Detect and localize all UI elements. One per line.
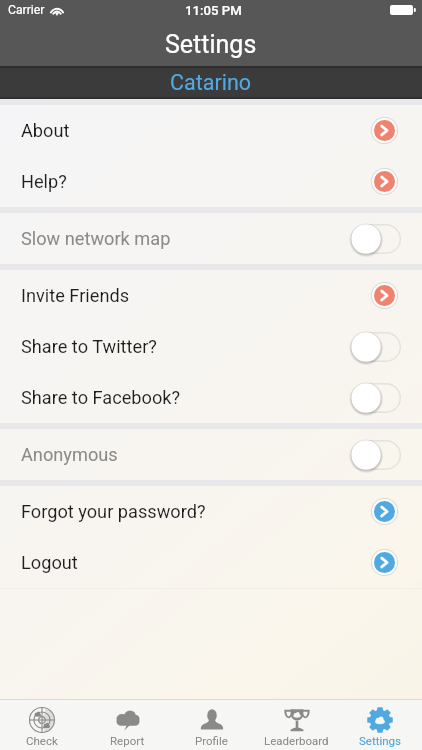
staticText: 11:05 PM <box>185 3 242 18</box>
staticText: Invite Friends <box>21 285 130 306</box>
other: Forgot your password <box>371 498 398 525</box>
other: Logout <box>371 549 398 576</box>
other: Help <box>371 168 398 195</box>
button[interactable]: Check <box>0 700 84 750</box>
staticText: About <box>21 120 70 141</box>
staticText: Leaderboard <box>264 734 329 747</box>
other: Toggle <box>351 383 401 413</box>
button[interactable]: Catarino <box>170 70 252 95</box>
button[interactable]: Settings <box>338 700 422 750</box>
staticText: Check <box>26 734 58 747</box>
button[interactable]: Profile <box>169 700 253 750</box>
other: Toggle <box>351 440 401 470</box>
button[interactable]: Forgot your password? <box>0 486 422 537</box>
button[interactable]: Share to Facebook? <box>0 372 422 423</box>
staticText: Profile <box>195 734 228 747</box>
button[interactable]: Help? <box>0 156 422 207</box>
staticText: Settings <box>165 30 257 59</box>
button[interactable]: Report <box>85 700 169 750</box>
other: Toggle <box>351 224 401 254</box>
staticText: Share to Twitter? <box>21 336 157 357</box>
button[interactable]: Leaderboard <box>254 700 338 750</box>
staticText: Report <box>110 734 145 747</box>
staticText: Carrier <box>8 3 45 17</box>
other: Invite Friends <box>371 282 398 309</box>
button[interactable]: Slow network map <box>0 213 422 264</box>
staticText: Slow network map <box>21 228 171 249</box>
other: Toggle <box>351 332 401 362</box>
staticText: Help? <box>21 171 67 192</box>
button[interactable]: About <box>0 105 422 156</box>
button[interactable]: Share to Twitter? <box>0 321 422 372</box>
other: About <box>371 117 398 144</box>
button[interactable]: Invite Friends <box>0 270 422 321</box>
staticText: Forgot your password? <box>21 501 206 522</box>
button[interactable]: Logout <box>0 537 422 588</box>
button[interactable]: Anonymous <box>0 429 422 480</box>
staticText: Settings <box>359 734 401 747</box>
staticText: Logout <box>21 552 78 573</box>
staticText: Share to Facebook? <box>21 387 181 408</box>
staticText: Anonymous <box>21 444 118 465</box>
